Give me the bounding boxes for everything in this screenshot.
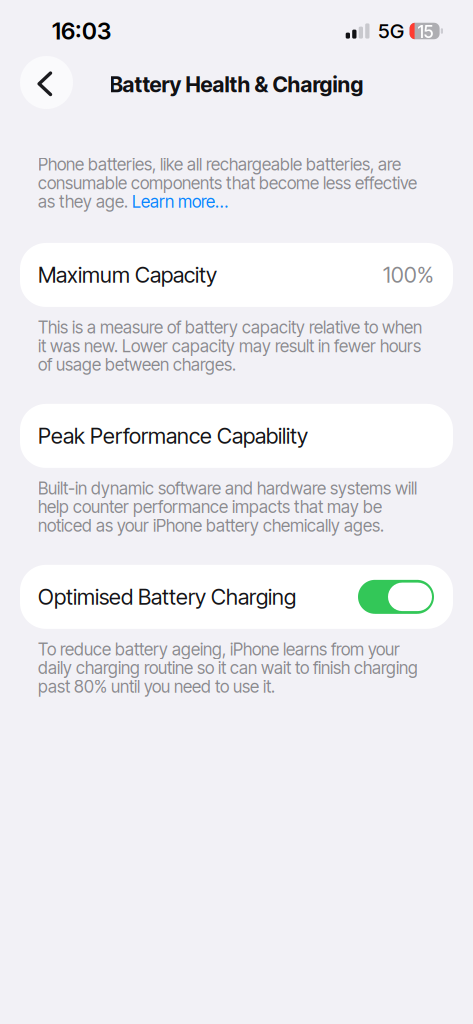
- button[interactable]: Back: [20, 56, 73, 109]
- button[interactable]: Optimised Battery Charging: [0, 565, 473, 629]
- staticText: This is a measure of battery capacity re…: [38, 317, 422, 337]
- staticText: daily charging routine so it can wait to…: [38, 657, 418, 678]
- staticText: help counter performance impacts that ma…: [38, 496, 382, 517]
- staticText: it was new. Lower capacity may result in…: [38, 336, 421, 356]
- staticText: 100%: [383, 262, 434, 288]
- staticText: past 80% until you need to use it.: [38, 676, 275, 697]
- staticText: of usage between charges.: [38, 354, 236, 375]
- staticText: 15: [418, 21, 434, 42]
- staticText: Maximum Capacity: [38, 262, 217, 288]
- staticText: Peak Performance Capability: [38, 423, 308, 449]
- staticText: Built-in dynamic software and hardware s…: [38, 478, 417, 498]
- staticText: 5G: [378, 19, 404, 43]
- staticText: Phone batteries, like all rechargeable b…: [38, 154, 401, 175]
- button[interactable]: Maximum Capacity: [0, 243, 473, 307]
- button[interactable]: Peak Performance Capability: [0, 404, 473, 468]
- staticText: 16:03: [52, 17, 111, 45]
- staticText: Learn more…: [132, 191, 228, 212]
- staticText: To reduce battery ageing, iPhone learns …: [38, 639, 400, 659]
- staticText: Optimised Battery Charging: [38, 584, 296, 610]
- staticText: consumable components that become less e…: [38, 173, 417, 193]
- staticText: noticed as your iPhone battery chemicall…: [38, 515, 384, 536]
- staticText: as they age.: [38, 191, 132, 212]
- staticText: Battery Health & Charging: [109, 72, 363, 97]
